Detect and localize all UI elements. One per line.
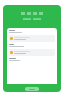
button[interactable]: Continue (3, 5, 61, 92)
button[interactable]: Continue (25, 87, 39, 91)
button[interactable] (9, 49, 55, 56)
button[interactable] (9, 35, 55, 42)
button[interactable] (7, 28, 57, 84)
